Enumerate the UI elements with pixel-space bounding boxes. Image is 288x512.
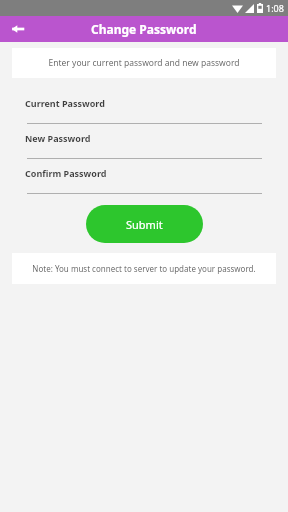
button[interactable]: Submit xyxy=(86,205,203,243)
button[interactable]: New Password xyxy=(0,125,288,160)
button[interactable]: Confirm Password xyxy=(0,160,288,195)
button[interactable]: Back xyxy=(0,16,36,42)
staticText: Enter your current password and new pass… xyxy=(48,57,240,69)
staticText: Change Password xyxy=(91,21,197,37)
staticText: Note: You must connect to server to upda… xyxy=(32,263,256,274)
staticText: Confirm Password xyxy=(25,167,107,179)
staticText: 1:08 xyxy=(266,2,284,14)
staticText: New Password xyxy=(25,132,91,144)
staticText: Submit xyxy=(126,217,163,232)
button[interactable]: Current Password xyxy=(0,90,288,125)
staticText: Current Password xyxy=(25,97,105,109)
